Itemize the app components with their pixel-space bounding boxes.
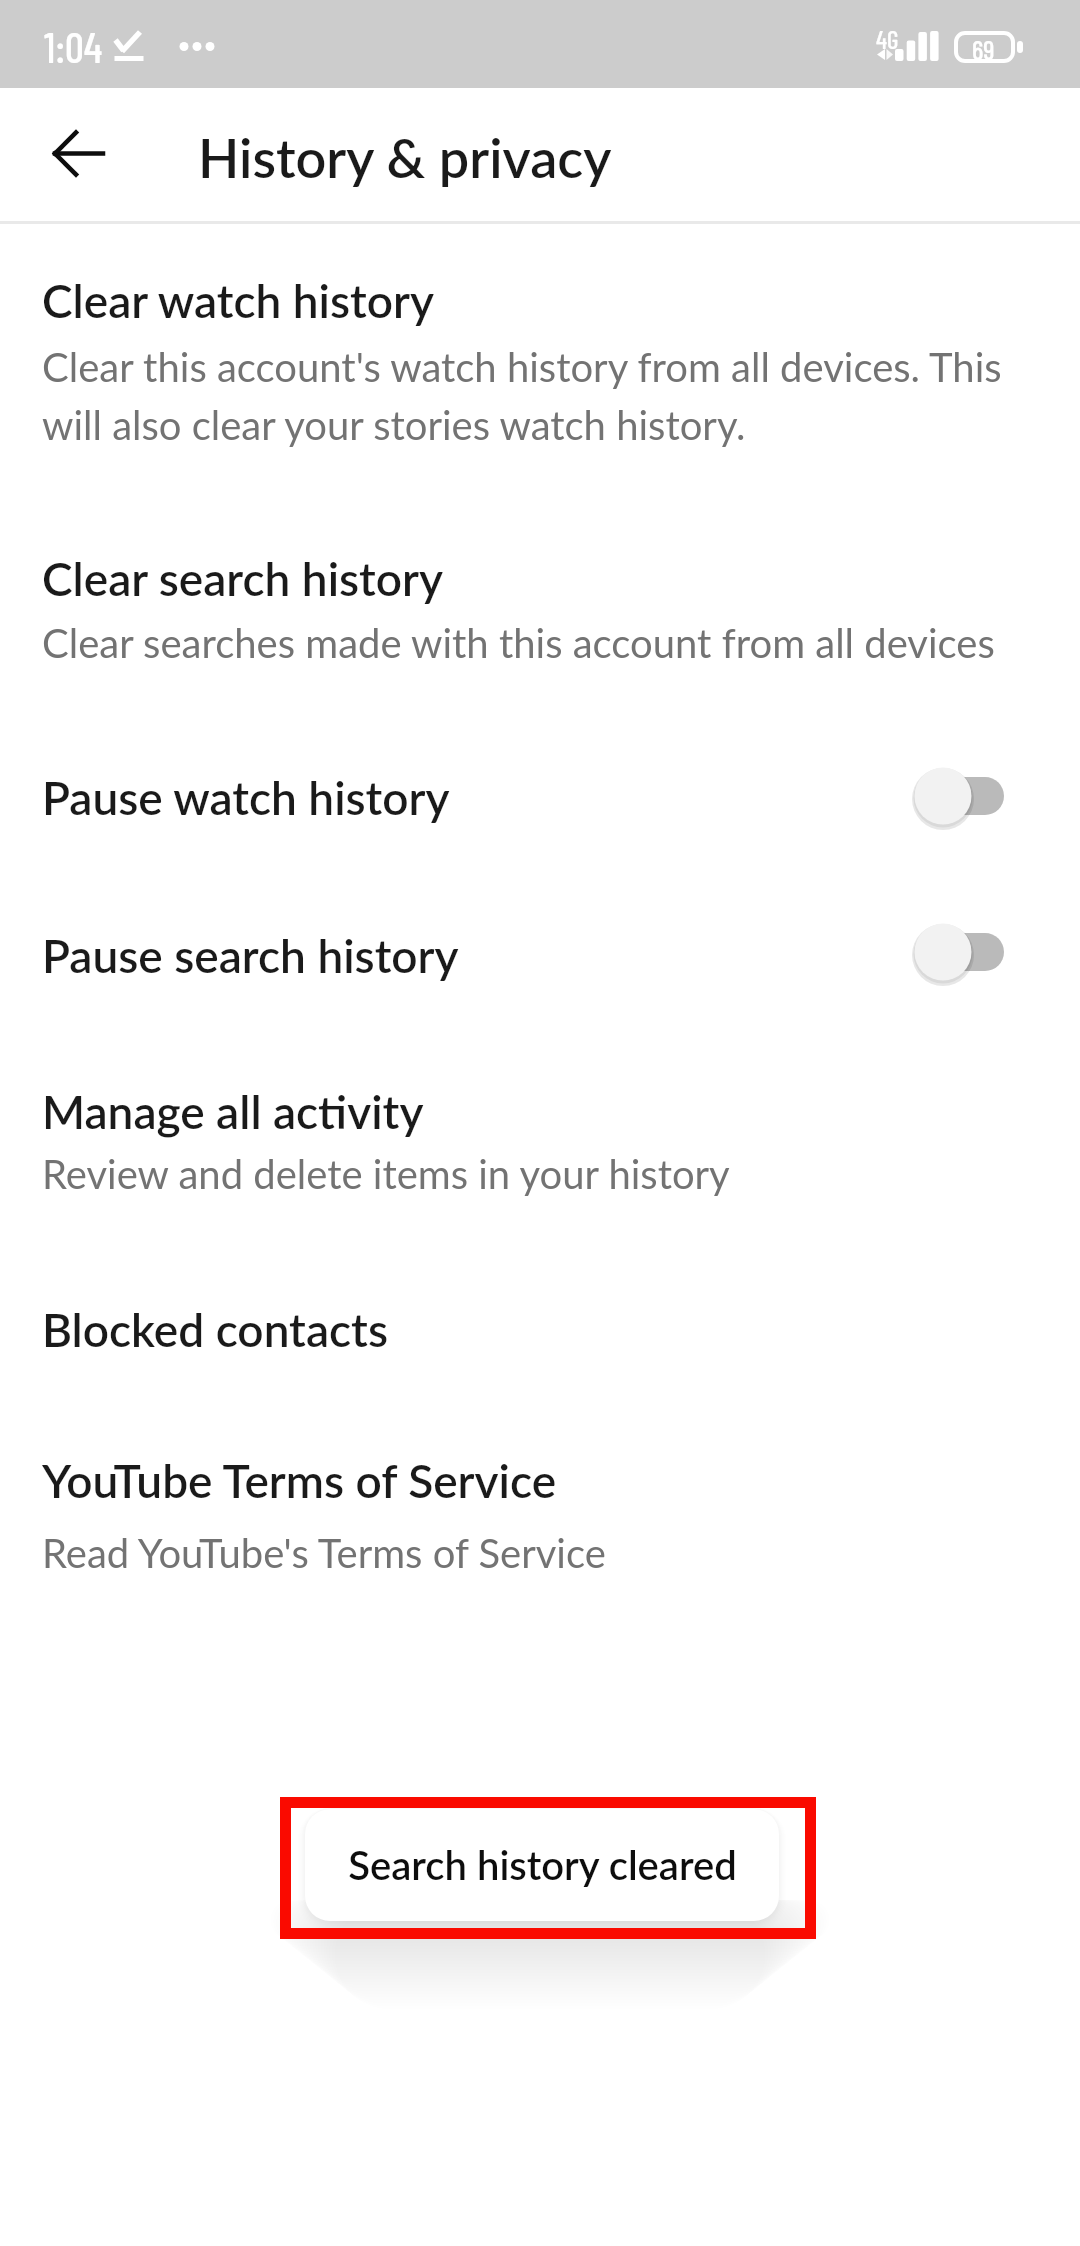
button[interactable]: Toggle bbox=[900, 751, 1020, 841]
staticText: Clear this account's watch history from … bbox=[42, 343, 1002, 391]
button[interactable]: Toggle bbox=[900, 907, 1020, 997]
staticText: History & privacy bbox=[198, 125, 612, 190]
button[interactable]: Pause watch history bbox=[0, 734, 1080, 874]
staticText: Read YouTube's Terms of Service bbox=[42, 1529, 606, 1577]
button[interactable]: Back bbox=[12, 88, 146, 222]
button[interactable]: Search history cleared bbox=[305, 1809, 779, 1921]
staticText: Clear search history bbox=[42, 551, 444, 606]
staticText: Manage all activity bbox=[42, 1084, 424, 1139]
button[interactable]: Manage all activity bbox=[0, 1048, 1080, 1226]
staticText: 4G bbox=[876, 24, 899, 54]
button[interactable]: Clear watch history bbox=[0, 232, 1080, 482]
staticText: Blocked contacts bbox=[42, 1302, 389, 1357]
staticText: Search history cleared bbox=[348, 1841, 737, 1889]
staticText: YouTube Terms of Service bbox=[42, 1453, 557, 1508]
staticText: Clear watch history bbox=[42, 273, 434, 328]
staticText: will also clear your stories watch histo… bbox=[42, 401, 746, 449]
button[interactable]: Blocked contacts bbox=[0, 1270, 1080, 1388]
staticText: Review and delete items in your history bbox=[42, 1150, 730, 1198]
button[interactable]: YouTube Terms of Service bbox=[0, 1418, 1080, 1596]
button[interactable]: Clear search history bbox=[0, 510, 1080, 700]
staticText: Clear searches made with this account fr… bbox=[42, 619, 995, 667]
button[interactable]: Pause search history bbox=[0, 892, 1080, 1032]
staticText: Pause watch history bbox=[42, 770, 450, 825]
staticText: 69 bbox=[972, 33, 995, 65]
staticText: 1:04 bbox=[44, 21, 103, 71]
staticText: Pause search history bbox=[42, 928, 459, 983]
